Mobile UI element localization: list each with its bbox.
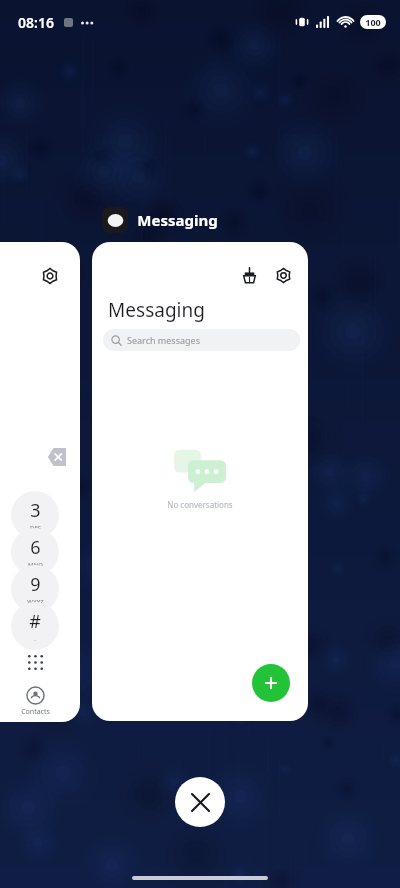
staticText: # bbox=[29, 609, 41, 634]
button[interactable]: Clean up bbox=[92, 242, 308, 721]
staticText: Search messages bbox=[127, 334, 200, 346]
staticText: WXYZ bbox=[27, 598, 44, 606]
staticText: . bbox=[34, 635, 36, 643]
staticText: No conversations bbox=[167, 499, 233, 510]
staticText: Messaging bbox=[108, 297, 205, 323]
button[interactable]: 6 bbox=[11, 528, 59, 576]
staticText: DEF bbox=[30, 524, 41, 532]
button[interactable]: 9 bbox=[11, 565, 59, 613]
button[interactable]: Backspace bbox=[40, 448, 66, 466]
button[interactable]: Settings bbox=[38, 264, 62, 288]
staticText: 9 bbox=[30, 572, 41, 597]
staticText: Contacts bbox=[21, 707, 50, 717]
button[interactable]: Clear all bbox=[175, 777, 225, 827]
staticText: 6 bbox=[30, 535, 41, 560]
button[interactable]: Contacts bbox=[12, 687, 58, 717]
button[interactable]: New conversation bbox=[252, 664, 290, 702]
button[interactable]: Search messages bbox=[103, 329, 300, 351]
button[interactable]: Settings bbox=[270, 262, 296, 288]
staticText: 08:16 bbox=[18, 13, 54, 32]
button[interactable]: # bbox=[11, 602, 59, 650]
staticText: 100 bbox=[365, 16, 381, 28]
staticText: MNO bbox=[28, 561, 43, 569]
button[interactable]: Settings bbox=[0, 242, 80, 722]
button[interactable]: Clean up bbox=[236, 262, 262, 288]
staticText: 3 bbox=[30, 498, 41, 523]
button[interactable]: 3 bbox=[11, 491, 59, 539]
button[interactable]: Keypad bbox=[23, 650, 47, 674]
staticText: Messaging bbox=[137, 210, 218, 230]
